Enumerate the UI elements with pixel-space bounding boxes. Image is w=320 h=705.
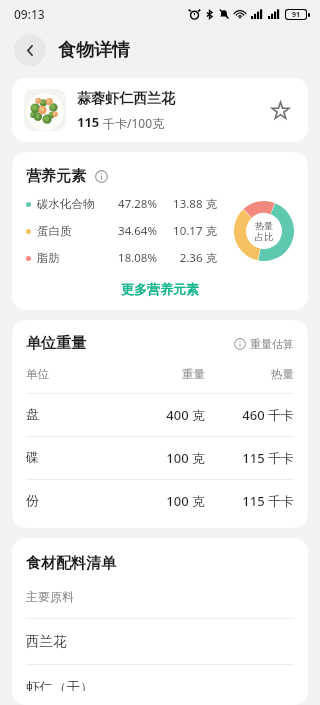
staticText: 重量 [116, 367, 205, 381]
staticText: 食物详情 [58, 39, 130, 62]
staticText: 单位 [26, 367, 49, 381]
button[interactable]: 重量估算 [234, 337, 294, 351]
staticText: 91 [292, 10, 301, 19]
staticText: 100 克 [116, 449, 205, 467]
staticText: 重量估算 [250, 337, 294, 351]
staticText: 蒜蓉虾仁西兰花 [77, 90, 175, 108]
staticText: 食材配料清单 [26, 554, 116, 573]
staticText: 460 千卡 [205, 406, 294, 424]
staticText: 13.88 克 [167, 196, 217, 212]
staticText: 虾仁（干） [26, 679, 94, 691]
staticText: 100 克 [116, 492, 205, 510]
staticText: 10.17 克 [167, 223, 217, 239]
staticText: 份 [26, 492, 39, 508]
staticText: 更多营养元素 [121, 281, 199, 297]
staticText: 09:13 [14, 6, 45, 22]
staticText: 热量 [255, 220, 273, 231]
staticText: 碟 [26, 449, 39, 465]
staticText: 400 克 [116, 406, 205, 424]
button[interactable]: 碟 [26, 437, 294, 479]
button[interactable]: 西兰花 [26, 619, 294, 664]
staticText: 蛋白质 [37, 224, 72, 238]
staticText: 2.36 克 [167, 250, 217, 266]
staticText: 热量 [205, 367, 294, 381]
staticText: 115 千卡 [205, 492, 294, 510]
staticText: 115 千卡 [205, 449, 294, 467]
staticText: 千卡/100克 [103, 115, 165, 131]
staticText: 碳水化合物 [37, 197, 95, 211]
button[interactable]: 虾仁（干） [26, 665, 294, 705]
button[interactable]: Favorite [264, 94, 296, 126]
staticText: 盘 [26, 406, 39, 422]
button[interactable]: 蒜蓉虾仁西兰花 [12, 78, 308, 142]
staticText: 18.08% [109, 250, 157, 266]
staticText: 115 [77, 113, 103, 131]
button[interactable]: 更多营养元素 [26, 278, 294, 300]
button[interactable]: Info [91, 166, 111, 186]
staticText: 脂肪 [37, 251, 60, 265]
button[interactable]: Back [14, 34, 46, 66]
staticText: 营养元素 [26, 167, 86, 186]
staticText: 西兰花 [26, 633, 67, 650]
staticText: 34.64% [109, 223, 157, 239]
staticText: 占比 [255, 231, 273, 242]
button[interactable]: 盘 [26, 394, 294, 436]
staticText: 47.28% [109, 196, 157, 212]
staticText: 单位重量 [26, 334, 86, 353]
button[interactable]: 份 [26, 480, 294, 522]
staticText: 主要原料 [26, 589, 74, 604]
